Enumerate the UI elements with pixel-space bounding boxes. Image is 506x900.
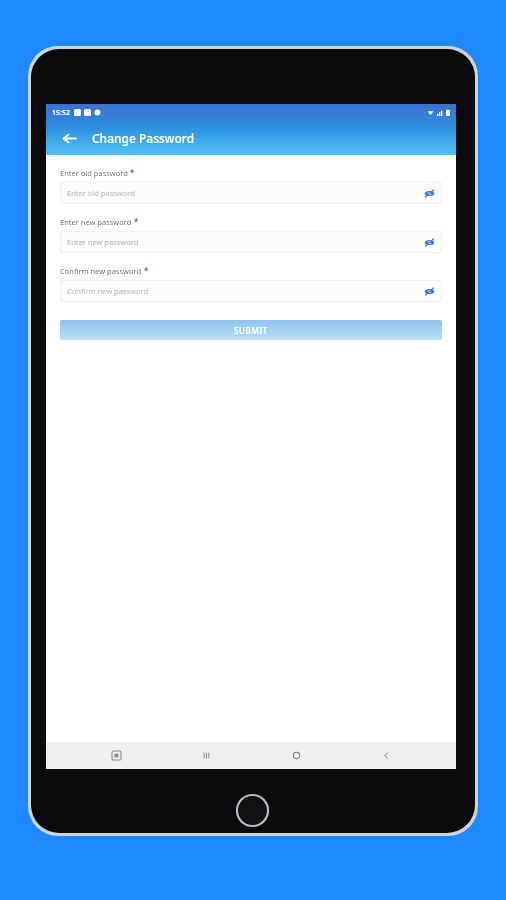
button[interactable]: Back: [56, 125, 82, 151]
button[interactable]: Enter new password: [60, 231, 442, 253]
staticText: *: [130, 167, 135, 178]
button[interactable]: Recents: [186, 742, 226, 769]
button[interactable]: Home: [276, 742, 316, 769]
button[interactable]: Confirm new password: [60, 280, 442, 302]
staticText: Enter old password: [67, 188, 135, 198]
button[interactable]: Toggle password visibility: [422, 284, 436, 298]
staticText: Enter new password: [67, 237, 139, 247]
button[interactable]: Enter old password: [60, 182, 442, 204]
button[interactable]: Toggle password visibility: [422, 186, 436, 200]
button[interactable]: SUBMIT: [60, 320, 442, 340]
staticText: Enter old password: [60, 168, 128, 178]
staticText: SUBMIT: [234, 325, 268, 336]
staticText: *: [134, 216, 139, 227]
staticText: 15:52: [52, 108, 70, 118]
staticText: Change Password: [92, 130, 195, 146]
staticText: *: [144, 265, 149, 276]
button[interactable]: Back: [366, 742, 406, 769]
button[interactable]: Toggle password visibility: [422, 235, 436, 249]
staticText: Confirm new password: [67, 286, 149, 296]
button[interactable]: Home button: [236, 794, 269, 827]
staticText: Enter new password: [60, 217, 132, 227]
staticText: Confirm new password: [60, 266, 142, 276]
button[interactable]: Screenshot: [96, 742, 136, 769]
